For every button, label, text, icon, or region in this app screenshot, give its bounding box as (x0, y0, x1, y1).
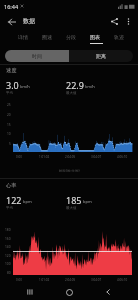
staticText: 1:01:02 (39, 155, 50, 159)
button[interactable]: Home (60, 284, 78, 300)
staticText: 2:04:05 (65, 155, 76, 159)
staticText: 140 (5, 245, 11, 249)
staticText: 图表 (90, 34, 100, 40)
staticText: 圈速 (42, 34, 52, 40)
staticText: km/h (85, 84, 95, 89)
staticText: km/h (20, 84, 30, 89)
staticText: 详情 (18, 34, 28, 40)
staticText: bpm (83, 199, 92, 204)
staticText: 4:06:10 (117, 278, 128, 282)
staticText: 0:00 (16, 155, 22, 159)
staticText: 3:04:07 (91, 278, 102, 282)
button[interactable]: 时间 (5, 50, 69, 62)
staticText: 15 (7, 123, 11, 127)
staticText: 最大值 (66, 91, 77, 95)
staticText: bpm (23, 199, 32, 204)
button[interactable]: Share (106, 13, 122, 29)
staticText: 80 (7, 271, 11, 275)
staticText: 2:04:05 (65, 278, 76, 282)
staticText: 平均 (6, 91, 13, 95)
button[interactable]: Back (99, 284, 117, 300)
staticText: 时间 (时:分:秒) (59, 169, 80, 173)
staticText: 最大值 (66, 206, 77, 210)
staticText: 分段 (66, 34, 76, 40)
staticText: 160 (5, 237, 11, 241)
staticText: 16:44 (4, 3, 19, 10)
staticText: 4:06:10 (117, 155, 128, 159)
staticText: 平均 (6, 206, 13, 210)
button[interactable]: 分段 (59, 29, 83, 45)
staticText: 0:00 (16, 278, 22, 282)
button[interactable]: 轨迹 (107, 29, 131, 45)
staticText: 3.0 (6, 79, 19, 91)
staticText: 100 (5, 262, 11, 266)
staticText: 距离 (96, 53, 106, 59)
staticText: 数据 (23, 17, 35, 25)
staticText: 22.9 (66, 79, 84, 91)
button[interactable]: 距离 (69, 50, 133, 62)
button[interactable]: Recent apps (21, 284, 39, 300)
staticText: 3:04:07 (91, 155, 102, 159)
staticText: 180 (5, 228, 11, 232)
staticText: 1:01:02 (39, 278, 50, 282)
staticText: 25 (7, 103, 11, 107)
staticText: 20 (7, 113, 11, 117)
staticText: 185 (66, 194, 82, 206)
button[interactable]: 详情 (11, 29, 35, 45)
button[interactable]: Back (3, 13, 20, 30)
staticText: 10 (7, 132, 11, 136)
button[interactable]: 图表 (83, 29, 107, 45)
staticText: 轨迹 (114, 34, 124, 40)
staticText: 心率 (6, 182, 17, 189)
staticText: 5 (9, 142, 11, 146)
staticText: 122 (6, 194, 22, 206)
button[interactable]: 圈速 (35, 29, 59, 45)
button[interactable]: More options (122, 15, 135, 28)
staticText: 时间 (32, 53, 42, 59)
staticText: 120 (5, 254, 11, 258)
staticText: 速度 (6, 67, 17, 74)
